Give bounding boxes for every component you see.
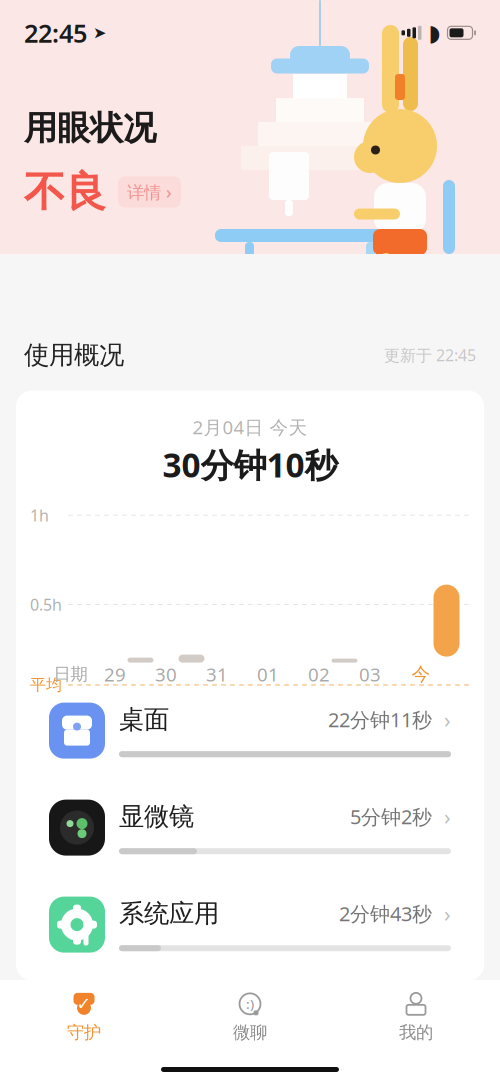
staticText: 显微镜 xyxy=(119,801,194,832)
staticText: 守护 xyxy=(67,1022,101,1043)
staticText: 不良 xyxy=(24,167,106,217)
staticText: 今 xyxy=(411,663,430,686)
staticText: 用眼状况 xyxy=(24,108,156,148)
staticText: ◗ xyxy=(428,20,440,46)
staticText: 微聊 xyxy=(233,1022,267,1043)
staticText: 2月04日 今天 xyxy=(192,415,307,439)
staticText: 平均 xyxy=(30,675,62,695)
staticText: 30分钟10秒 xyxy=(162,442,337,487)
button[interactable]: 显微镜 xyxy=(48,788,452,885)
staticText: 详情 › xyxy=(127,180,172,203)
staticText: 0.5h xyxy=(30,594,62,615)
staticText: › xyxy=(432,802,451,831)
staticText: › xyxy=(432,899,451,928)
staticText: 5分钟2秒 xyxy=(350,803,432,830)
staticText: 系统应用 xyxy=(119,898,219,929)
staticText: 22分钟11秒 xyxy=(328,706,432,733)
staticText: 31 xyxy=(206,662,228,687)
staticText: › xyxy=(432,705,451,734)
staticText: ✓ xyxy=(76,994,91,1014)
staticText: ➤ xyxy=(87,24,106,42)
button[interactable]: 详情 › xyxy=(118,176,181,207)
staticText: 03 xyxy=(359,662,381,687)
staticText: 1h xyxy=(30,505,49,526)
button[interactable]: 系统应用 xyxy=(48,885,452,982)
button[interactable]: 桌面 xyxy=(48,691,452,788)
staticText: 22:45 xyxy=(24,16,87,50)
staticText: 桌面 xyxy=(119,704,169,735)
staticText: 日期 xyxy=(53,664,87,685)
staticText: 使用概况 xyxy=(24,339,124,370)
staticText: 2分钟43秒 xyxy=(339,900,432,927)
staticText: 更新于 22:45 xyxy=(384,344,476,366)
staticText: 01 xyxy=(257,662,279,687)
staticText: 30 xyxy=(155,662,177,687)
staticText: 02 xyxy=(308,662,330,687)
button[interactable]: 我的 xyxy=(333,989,499,1045)
button[interactable]: ✓ xyxy=(1,989,167,1045)
button[interactable]: :) xyxy=(167,989,333,1045)
staticText: :) xyxy=(246,995,254,1013)
staticText: 我的 xyxy=(399,1022,433,1043)
staticText: 29 xyxy=(104,662,126,687)
